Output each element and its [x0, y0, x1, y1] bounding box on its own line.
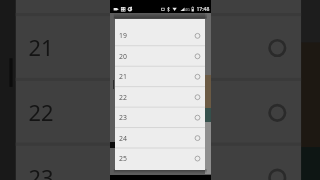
button[interactable]: 20	[16, 0, 301, 13]
staticText: 21	[28, 34, 54, 62]
staticText: 22	[119, 93, 127, 102]
staticText: 25	[119, 154, 127, 163]
staticText: 23	[119, 113, 127, 122]
staticText: 17:48	[196, 6, 210, 13]
button[interactable]: 19	[115, 25, 205, 45]
staticText: 22	[28, 99, 54, 127]
staticText: 19	[119, 31, 127, 40]
button[interactable]: 23	[16, 144, 301, 180]
button[interactable]: 20	[115, 46, 205, 66]
button[interactable]: 25	[115, 148, 205, 168]
button[interactable]: 21	[16, 15, 301, 78]
staticText: 20	[119, 52, 127, 61]
staticText: 24	[119, 134, 127, 143]
staticText: 23	[28, 163, 54, 180]
button[interactable]: 24	[115, 128, 205, 148]
button[interactable]: 23	[115, 107, 205, 127]
button[interactable]: 22	[16, 79, 301, 143]
button[interactable]: 22	[115, 87, 205, 107]
staticText: 4G	[185, 7, 191, 12]
button[interactable]: 21	[115, 66, 205, 86]
staticText: 21	[119, 72, 127, 81]
